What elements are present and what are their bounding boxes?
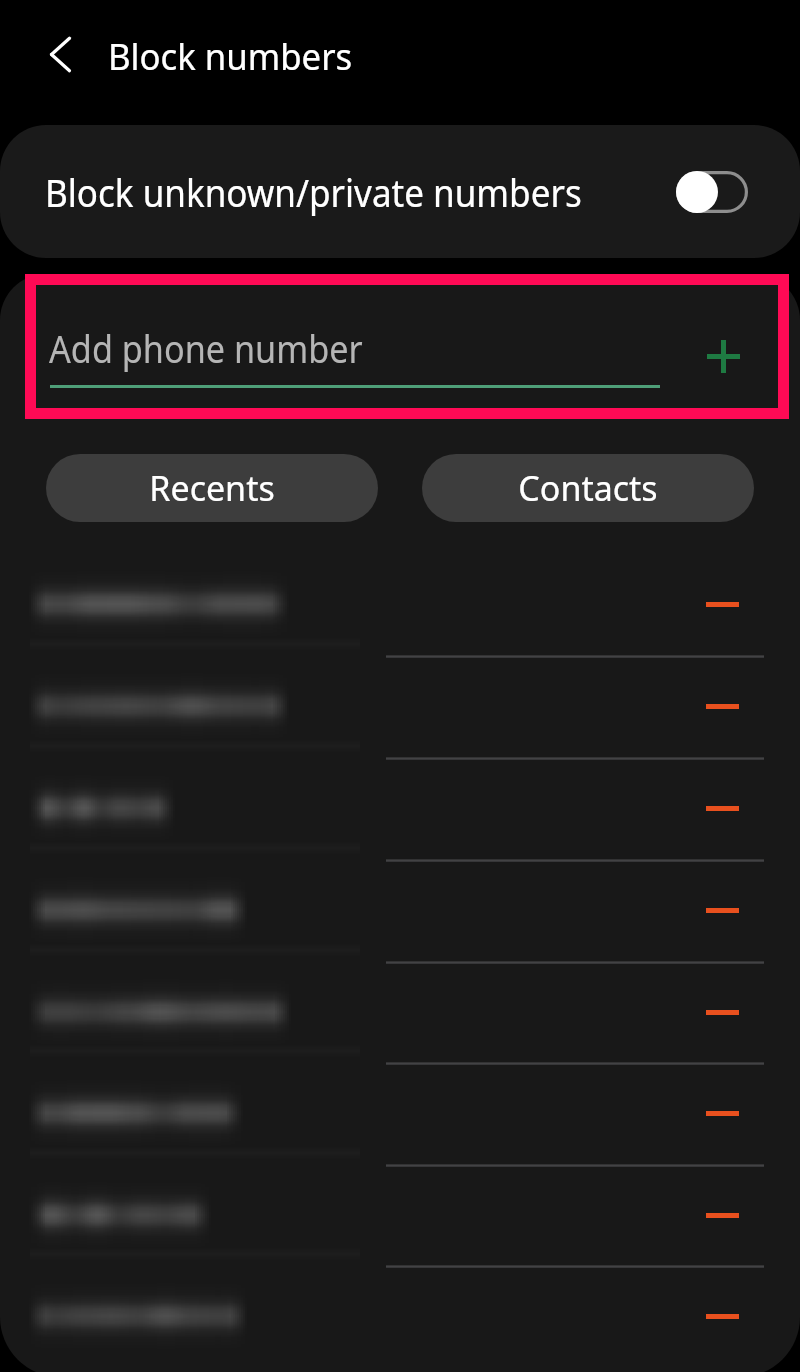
button[interactable]: Unblock number xyxy=(0,554,800,656)
button[interactable]: Unblock number xyxy=(0,758,800,860)
button[interactable]: Block unknown numbers switch xyxy=(676,171,748,213)
button[interactable]: Unblock number xyxy=(0,860,800,962)
staticText: Recents xyxy=(149,465,275,511)
staticText: Block unknown/private numbers xyxy=(45,166,627,218)
staticText: Contacts xyxy=(518,465,658,511)
staticText: Add phone number xyxy=(49,322,363,374)
button[interactable]: Unblock number xyxy=(692,1185,752,1245)
button[interactable]: Unblock number xyxy=(692,676,752,736)
button[interactable]: Unblock number xyxy=(692,778,752,838)
button[interactable]: Unblock number xyxy=(692,574,752,634)
button[interactable]: Navigate back xyxy=(26,22,98,94)
staticText: Block numbers xyxy=(108,32,353,81)
button[interactable]: Contacts xyxy=(422,454,754,522)
button[interactable]: Unblock number xyxy=(0,1165,800,1266)
button[interactable]: Unblock number xyxy=(0,1266,800,1368)
button[interactable]: Unblock number xyxy=(0,1063,800,1165)
button[interactable]: Recents xyxy=(46,454,378,522)
button[interactable]: Unblock number xyxy=(0,656,800,758)
button[interactable]: Unblock number xyxy=(692,1083,752,1143)
button[interactable]: Unblock number xyxy=(0,962,800,1063)
button[interactable]: Unblock number xyxy=(692,880,752,940)
button[interactable]: Unblock number xyxy=(692,1286,752,1346)
button[interactable]: Block unknown/private numbers xyxy=(0,125,800,258)
button[interactable]: Add number xyxy=(692,325,754,387)
button[interactable]: Unblock number xyxy=(692,982,752,1042)
